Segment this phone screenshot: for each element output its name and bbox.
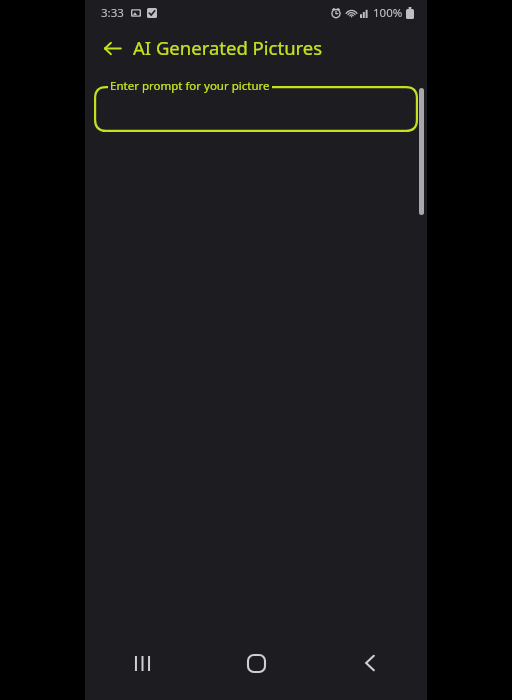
button[interactable]: Recent apps <box>85 639 199 687</box>
staticText: Enter prompt for your picture <box>110 78 270 94</box>
button[interactable]: Back <box>313 639 427 687</box>
button[interactable]: Back <box>94 30 130 66</box>
button[interactable]: Enter prompt for your picture <box>94 86 418 132</box>
staticText: 100% <box>373 5 403 21</box>
staticText: 3:33 <box>101 5 124 21</box>
staticText: AI Generated Pictures <box>133 35 323 60</box>
button[interactable]: Home <box>199 639 313 687</box>
